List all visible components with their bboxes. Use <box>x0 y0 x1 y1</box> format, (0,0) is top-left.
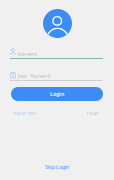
staticText: Skip Login <box>45 163 69 171</box>
button[interactable]: Register Now <box>13 110 36 116</box>
staticText: Login <box>50 90 64 98</box>
button[interactable]: Forget <box>87 110 98 116</box>
staticText: Forget <box>87 110 98 116</box>
staticText: Username <box>17 51 36 56</box>
button[interactable]: Skip Login <box>0 163 114 171</box>
staticText: Enter Password <box>17 73 50 78</box>
button[interactable]: Login <box>11 87 103 101</box>
staticText: Register Now <box>13 110 36 116</box>
